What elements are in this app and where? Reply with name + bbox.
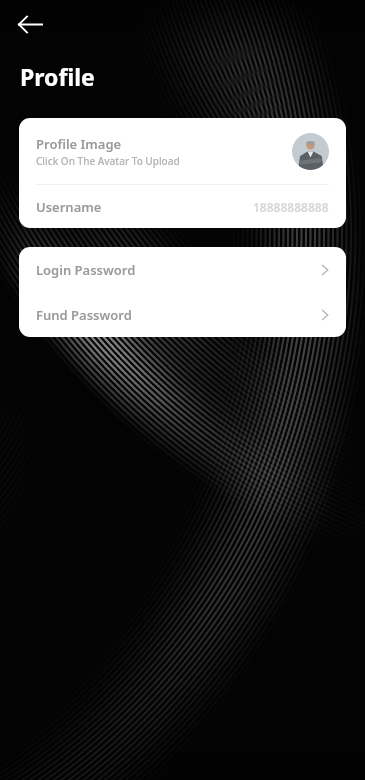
button[interactable]: Username <box>19 185 346 228</box>
button[interactable]: Login Password <box>19 247 346 292</box>
staticText: Profile <box>20 61 95 92</box>
button[interactable]: Back <box>12 6 48 42</box>
button[interactable]: Fund Password <box>19 292 346 337</box>
button[interactable]: Upload avatar <box>292 133 329 170</box>
staticText: 18888888888 <box>253 199 329 215</box>
staticText: Fund Password <box>36 306 132 324</box>
staticText: Username <box>36 198 102 216</box>
staticText: Profile Image <box>36 135 122 153</box>
staticText: Click On The Avatar To Upload <box>36 154 180 168</box>
button[interactable]: Profile Image <box>19 118 346 184</box>
staticText: Login Password <box>36 261 136 279</box>
